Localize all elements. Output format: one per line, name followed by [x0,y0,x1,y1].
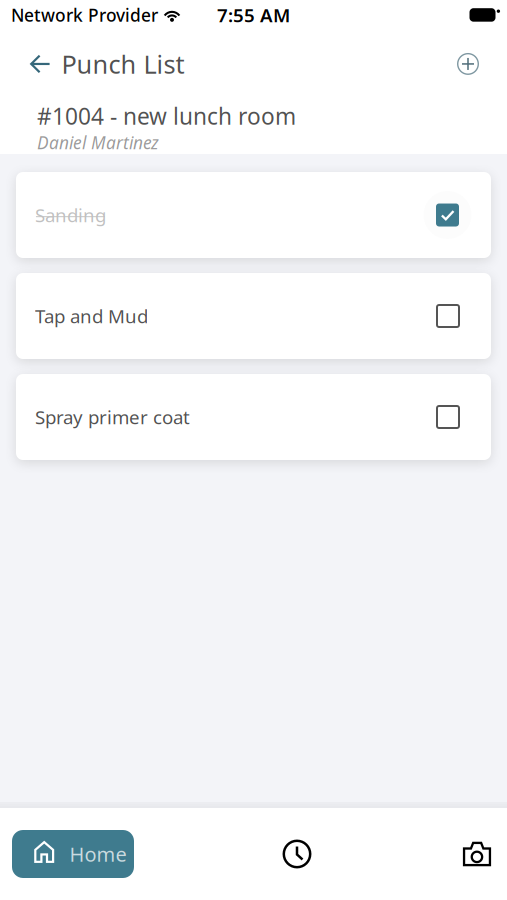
staticText: Network Provider [11,3,158,26]
staticText: Punch List [62,47,185,81]
staticText: Daniel Martinez [37,131,159,154]
button[interactable]: Camera [448,830,506,878]
staticText: Spray primer coat [35,405,190,429]
button[interactable]: Home [12,830,134,878]
button[interactable]: Sanding [16,172,491,258]
button[interactable]: History [268,830,326,878]
button[interactable]: Punch List [0,42,199,86]
staticText: Home [69,841,126,867]
staticText: Sanding [35,203,106,227]
button[interactable]: Spray primer coat [16,374,491,460]
staticText: Tap and Mud [35,304,148,328]
button[interactable]: Add item [440,42,507,86]
staticText: #1004 - new lunch room [37,101,296,131]
staticText: 7:55 AM [217,2,290,27]
button[interactable]: Tap and Mud [16,273,491,359]
